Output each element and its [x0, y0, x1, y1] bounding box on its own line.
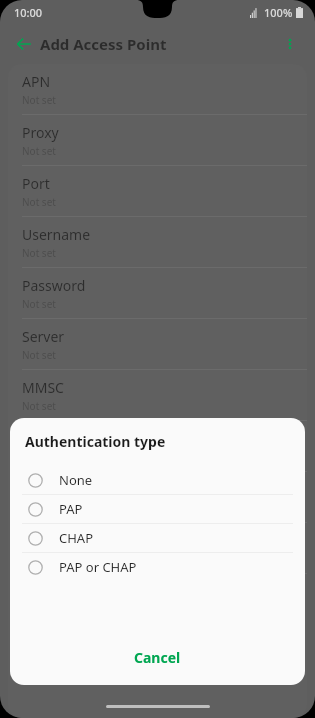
staticText: 10:00	[14, 5, 43, 20]
staticText: Authentication type	[25, 432, 166, 451]
staticText: Not set	[22, 297, 56, 311]
button[interactable]: None	[10, 466, 305, 494]
staticText: Add Access Point	[40, 34, 167, 54]
staticText: Not set	[22, 552, 56, 566]
button[interactable]: MCC	[8, 523, 307, 573]
staticText: Not set	[22, 501, 56, 515]
button[interactable]: MMS port	[8, 472, 307, 522]
staticText: MMSC	[22, 378, 64, 397]
staticText: MMS port	[22, 480, 87, 499]
staticText: None	[59, 471, 93, 489]
button[interactable]: Proxy	[8, 115, 307, 165]
staticText: Not set	[22, 246, 56, 260]
button[interactable]: PAP	[10, 495, 305, 523]
button[interactable]: APN	[8, 64, 307, 114]
button[interactable]: Server	[8, 319, 307, 369]
button[interactable]: More options	[275, 29, 305, 59]
button[interactable]: MNC	[8, 574, 307, 624]
button[interactable]: Username	[8, 217, 307, 267]
button[interactable]: Cancel	[10, 635, 305, 679]
staticText: Not set	[22, 399, 56, 413]
staticText: APN	[22, 72, 51, 91]
staticText: Not set	[22, 195, 56, 209]
staticText: Not set	[22, 93, 56, 107]
button[interactable]: MMSC	[8, 370, 307, 420]
staticText: Username	[22, 225, 91, 244]
staticText: MMS proxy	[22, 429, 96, 448]
button[interactable]: CHAP	[10, 524, 305, 552]
button[interactable]: Port	[8, 166, 307, 216]
button[interactable]: Password	[8, 268, 307, 318]
staticText: Proxy	[22, 123, 59, 142]
staticText: PAP	[59, 500, 83, 518]
staticText: Port	[22, 174, 50, 193]
button[interactable]: MMS proxy	[8, 421, 307, 471]
staticText: 100%	[264, 5, 293, 20]
staticText: MCC	[22, 531, 53, 550]
staticText: Password	[22, 276, 86, 295]
staticText: PAP or CHAP	[59, 558, 137, 576]
staticText: Cancel	[134, 648, 181, 667]
button[interactable]: PAP or CHAP	[10, 553, 305, 581]
staticText: Not set	[22, 144, 56, 158]
staticText: Not set	[22, 348, 56, 362]
button[interactable]: Back	[8, 28, 40, 60]
staticText: Server	[22, 327, 65, 346]
staticText: CHAP	[59, 529, 94, 547]
